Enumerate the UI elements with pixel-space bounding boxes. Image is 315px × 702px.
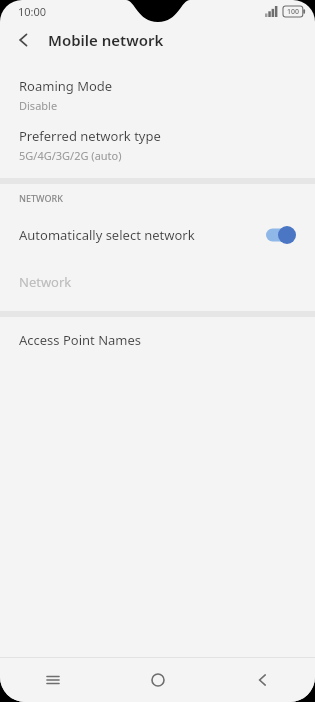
staticText: Access Point Names <box>19 331 142 349</box>
staticText: Disable <box>19 98 58 113</box>
staticText: Preferred network type <box>19 127 161 145</box>
staticText: Roaming Mode <box>19 77 113 95</box>
button[interactable]: Back <box>0 22 48 58</box>
button[interactable]: Network <box>0 258 315 305</box>
staticText: Automatically select network <box>19 226 266 244</box>
staticText: 100 <box>287 7 300 17</box>
button[interactable]: Home <box>105 658 210 702</box>
staticText: Mobile network <box>48 30 164 50</box>
staticText: 10:00 <box>18 4 47 19</box>
button[interactable]: Access Point Names <box>0 317 315 363</box>
staticText: NETWORK <box>19 192 63 204</box>
button[interactable]: Recent apps <box>0 658 105 702</box>
button[interactable]: Roaming Mode <box>0 70 315 120</box>
button[interactable]: Automatically select network <box>0 212 315 258</box>
button[interactable]: Preferred network type <box>0 120 315 170</box>
staticText: 5G/4G/3G/2G (auto) <box>19 148 122 163</box>
staticText: Network <box>19 273 72 291</box>
button[interactable]: Back <box>210 658 315 702</box>
